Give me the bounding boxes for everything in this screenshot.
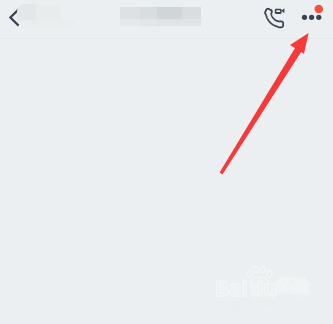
- button[interactable]: Back: [0, 3, 28, 31]
- button[interactable]: More options: [296, 2, 330, 36]
- button[interactable]: Video call: [254, 1, 290, 37]
